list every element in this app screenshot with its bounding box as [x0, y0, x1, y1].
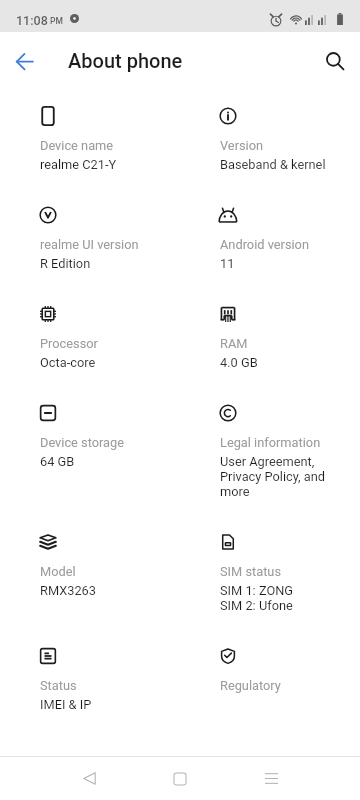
button[interactable]: Device name — [40, 108, 176, 172]
staticText: R Edition — [40, 256, 91, 271]
staticText: 11 — [220, 256, 235, 271]
staticText: Android version — [220, 237, 309, 252]
staticText: SIM 1: ZONG SIM 2: Ufone — [220, 583, 294, 613]
button[interactable]: Status — [40, 648, 176, 712]
staticText: 64 GB — [40, 454, 75, 469]
staticText: 11:08 — [16, 13, 48, 28]
button[interactable]: Device storage — [40, 405, 176, 469]
staticText: SIM status — [220, 564, 282, 579]
staticText: RAM — [220, 336, 248, 351]
button[interactable]: Legal information — [220, 405, 356, 499]
staticText: Legal information — [220, 435, 321, 450]
staticText: realme UI version — [40, 237, 139, 252]
button[interactable]: Search — [313, 39, 357, 83]
button[interactable]: SIM status — [220, 534, 356, 613]
button[interactable]: Home — [158, 757, 202, 800]
staticText: Processor — [40, 336, 98, 351]
staticText: realme C21-Y — [40, 157, 117, 172]
staticText: Model — [40, 564, 76, 579]
button[interactable]: Version — [220, 108, 356, 172]
button[interactable]: Model — [40, 534, 176, 598]
button[interactable]: Back — [67, 757, 111, 800]
button[interactable]: realme UI version — [40, 207, 176, 271]
staticText: IMEI & IP — [40, 697, 92, 712]
staticText: 4.0 GB — [220, 355, 258, 370]
staticText: User Agreement, Privacy Policy, and more — [220, 454, 326, 499]
staticText: RMX3263 — [40, 583, 96, 598]
staticText: Baseband & kernel — [220, 157, 326, 172]
staticText: Device name — [40, 138, 114, 153]
staticText: Status — [40, 678, 77, 693]
button[interactable]: Android version — [220, 207, 356, 271]
staticText: Device storage — [40, 435, 125, 450]
staticText: Octa-core — [40, 355, 96, 370]
button[interactable]: Back — [2, 39, 46, 83]
staticText: Regulatory — [220, 678, 281, 693]
button[interactable]: Recents — [249, 757, 293, 800]
button[interactable]: RAM — [220, 306, 356, 370]
staticText: About phone — [68, 49, 183, 72]
button[interactable]: Regulatory — [220, 648, 356, 693]
staticText: PM — [50, 16, 63, 26]
staticText: Version — [220, 138, 264, 153]
button[interactable]: Processor — [40, 306, 176, 370]
